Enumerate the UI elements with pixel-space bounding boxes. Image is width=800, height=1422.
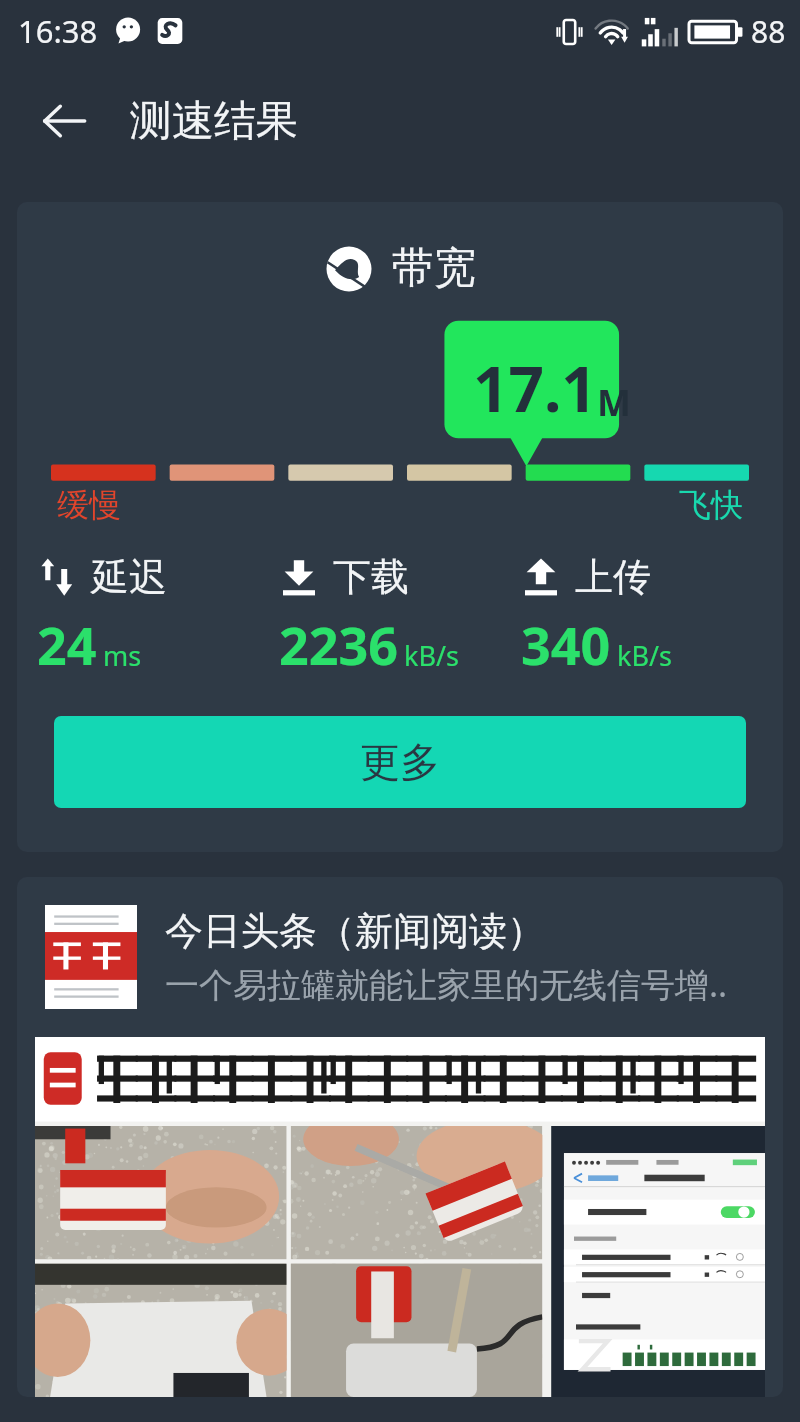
- staticText: 测速结果: [130, 95, 298, 148]
- staticText: ms: [103, 637, 142, 674]
- button[interactable]: 今日头条（新闻阅读）: [17, 877, 783, 1397]
- staticText: 延迟: [91, 553, 167, 601]
- staticText: 一个易拉罐就能让家里的无线信号增..: [165, 961, 728, 1007]
- staticText: M: [597, 378, 631, 427]
- staticText: 上传: [575, 553, 651, 601]
- staticText: 下载: [333, 553, 409, 601]
- staticText: 更多: [360, 737, 440, 787]
- staticText: 88: [751, 11, 786, 52]
- staticText: 飞快: [679, 485, 743, 525]
- staticText: 2236: [279, 609, 398, 680]
- button[interactable]: Back: [28, 85, 100, 157]
- button[interactable]: 更多: [54, 716, 746, 808]
- staticText: kB/s: [404, 637, 459, 674]
- staticText: 340: [521, 609, 611, 680]
- staticText: 24: [37, 609, 97, 680]
- staticText: 缓慢: [57, 485, 121, 525]
- staticText: kB/s: [617, 637, 672, 674]
- staticText: 16:38: [18, 10, 98, 52]
- staticText: 17.1: [473, 346, 597, 430]
- staticText: 带宽: [392, 242, 476, 295]
- staticText: 今日头条（新闻阅读）: [165, 907, 545, 955]
